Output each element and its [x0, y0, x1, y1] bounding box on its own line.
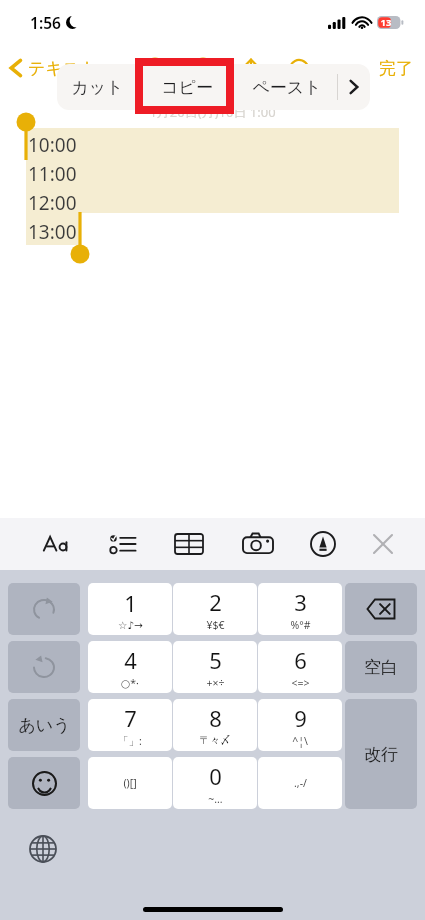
staticText: 〒々〆: [199, 734, 231, 747]
staticText: 改行: [364, 744, 398, 765]
button[interactable]: Circle: [144, 57, 166, 79]
staticText: 3: [294, 587, 307, 617]
staticText: 0: [209, 761, 222, 791]
button[interactable]: Camera: [241, 527, 275, 561]
button[interactable]: 3: [258, 583, 342, 635]
staticText: ○*·: [121, 676, 139, 690]
staticText: ~…: [208, 792, 223, 806]
staticText: テキスト: [28, 58, 98, 79]
button[interactable]: Table: [172, 527, 206, 561]
staticText: あいう: [18, 715, 71, 736]
staticText: 4: [124, 645, 137, 675]
staticText: ()[]: [123, 776, 137, 790]
staticText: 10:00: [28, 132, 77, 158]
button[interactable]: Circle 2: [192, 57, 214, 79]
button[interactable]: 7: [88, 699, 172, 751]
staticText: カット: [71, 77, 124, 98]
button[interactable]: Delete: [345, 583, 417, 635]
staticText: ¥$€: [206, 618, 225, 632]
staticText: ☆♪→: [118, 619, 143, 631]
button[interactable]: More: [338, 64, 370, 110]
button[interactable]: 6: [258, 641, 342, 693]
staticText: +×÷: [206, 676, 225, 690]
button[interactable]: 2: [173, 583, 257, 635]
staticText: 11:00: [28, 161, 77, 187]
button[interactable]: Switch keyboard: [22, 828, 64, 870]
staticText: 5: [209, 645, 222, 675]
staticText: 2: [209, 587, 222, 617]
button[interactable]: Emoji: [8, 757, 80, 809]
staticText: 1: [124, 588, 137, 618]
button[interactable]: カット: [57, 64, 137, 110]
button[interactable]: ペースト: [237, 64, 337, 110]
staticText: 12:00: [28, 190, 77, 216]
button[interactable]: Text format: [40, 527, 74, 561]
staticText: 13: [379, 16, 393, 29]
button[interactable]: Back: [8, 56, 98, 80]
button[interactable]: .,-/: [258, 757, 342, 809]
button[interactable]: Checklist: [106, 527, 140, 561]
staticText: 9: [294, 703, 307, 733]
button[interactable]: 改行: [345, 699, 417, 809]
staticText: 空白: [364, 657, 398, 678]
button[interactable]: Redo: [8, 583, 80, 635]
staticText: 1月20日(月)10日 1:00: [149, 103, 276, 121]
staticText: %°#: [290, 618, 311, 632]
staticText: ^¦\: [292, 734, 308, 748]
staticText: .,-/: [294, 776, 307, 790]
button[interactable]: 4: [88, 641, 172, 693]
staticText: 1:56: [30, 12, 61, 33]
staticText: ペースト: [252, 77, 322, 98]
staticText: 13:00: [28, 219, 77, 245]
staticText: 7: [124, 703, 137, 733]
button[interactable]: コピー: [137, 64, 237, 110]
button[interactable]: 完了: [379, 58, 413, 79]
button[interactable]: 5: [173, 641, 257, 693]
button[interactable]: 8: [173, 699, 257, 751]
staticText: コピー: [161, 77, 213, 98]
button[interactable]: Undo: [288, 57, 310, 79]
button[interactable]: 空白: [345, 641, 417, 693]
button[interactable]: Markup: [306, 527, 340, 561]
staticText: 8: [209, 703, 222, 733]
staticText: 「」:: [118, 734, 142, 748]
staticText: <=>: [291, 676, 310, 690]
button[interactable]: 0: [173, 757, 257, 809]
button[interactable]: Share: [240, 57, 262, 79]
button[interactable]: Close: [366, 527, 400, 561]
staticText: 6: [294, 645, 307, 675]
button[interactable]: ()[]: [88, 757, 172, 809]
button[interactable]: あいう: [8, 699, 80, 751]
button[interactable]: 1: [88, 583, 172, 635]
button[interactable]: Undo: [8, 641, 80, 693]
button[interactable]: 9: [258, 699, 342, 751]
